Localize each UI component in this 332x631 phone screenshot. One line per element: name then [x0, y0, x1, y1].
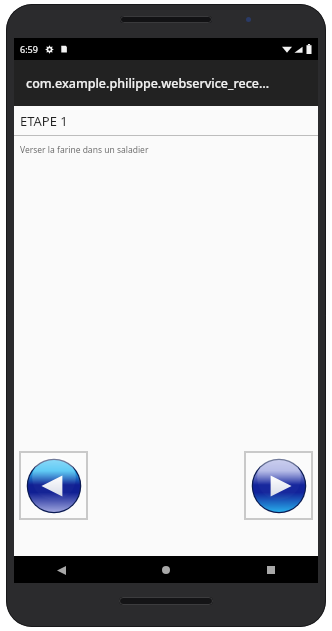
staticText: Verser la farine dans un saladier — [20, 144, 149, 156]
staticText: 6:59 — [20, 43, 38, 55]
button[interactable]: Back — [48, 557, 74, 583]
button[interactable]: Previous step — [19, 451, 88, 520]
button[interactable]: Home — [153, 557, 179, 583]
staticText: ETAPE 1 — [20, 112, 68, 130]
staticText: com.example.philippe.webservice_rece… — [26, 75, 270, 92]
button[interactable]: Next step — [244, 451, 313, 520]
button[interactable]: Recent apps — [258, 557, 284, 583]
